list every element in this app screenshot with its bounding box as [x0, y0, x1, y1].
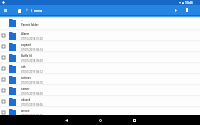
button[interactable]: Select item [0, 84, 200, 95]
button[interactable]: Select item [2, 111, 5, 114]
staticText: sattexs [21, 76, 31, 80]
staticText: 07/07/2019 08:14 [21, 48, 43, 52]
staticText: Alarm [21, 32, 30, 36]
button[interactable]: Select item [0, 73, 200, 84]
button[interactable]: Select item [2, 100, 5, 103]
staticText: 07/07/2019 08:10 [21, 81, 43, 85]
staticText: expand [21, 43, 31, 47]
staticText: > [26, 8, 28, 12]
button[interactable]: Home [96, 116, 105, 125]
button[interactable]: Select item [2, 67, 5, 70]
staticText: oth [21, 65, 26, 69]
button[interactable]: More options [182, 5, 192, 15]
staticText: mms [34, 8, 43, 13]
staticText: Buffa_fd [21, 54, 33, 58]
button[interactable]: Select item [2, 78, 5, 81]
button[interactable]: Recent apps [130, 116, 139, 125]
button[interactable]: Select item [0, 106, 200, 115]
button[interactable]: Play [171, 5, 181, 15]
button[interactable]: Select item [0, 62, 200, 73]
button[interactable]: Back [62, 116, 71, 125]
staticText: .. [21, 18, 23, 22]
staticText: 07/07/2019 08:12 [21, 70, 43, 74]
staticText: 07/07/2018 09:09 [21, 59, 43, 63]
button[interactable]: Select item [0, 51, 200, 62]
button[interactable]: Select item [2, 56, 5, 59]
button[interactable]: Navigation menu [0, 5, 11, 15]
button[interactable]: .. [0, 18, 200, 29]
staticText: camer [21, 87, 30, 91]
staticText: vdcard [21, 98, 31, 102]
staticText: Parent folder [21, 23, 39, 27]
staticText: 07/07/2019 08:09 [21, 92, 43, 96]
button[interactable]: Select item [0, 29, 200, 40]
button[interactable]: Select item [0, 95, 200, 106]
button[interactable]: Select item [2, 89, 5, 92]
button[interactable]: Internal storage [17, 8, 22, 13]
staticText: weoce [21, 109, 30, 113]
staticText: 07/07/2019 08:01 [21, 114, 43, 118]
staticText: 07/07/2019 08:06 [21, 103, 43, 107]
staticText: 10:46 [185, 1, 193, 5]
button[interactable]: Select item [2, 45, 5, 48]
button[interactable]: Select item [2, 34, 5, 37]
button[interactable]: Select item [0, 40, 200, 51]
staticText: 07/10/2018 01:20 [21, 37, 43, 41]
